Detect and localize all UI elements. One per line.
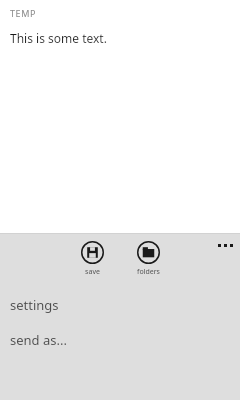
other: save — [81, 241, 104, 264]
staticText: This is some text. — [10, 30, 107, 46]
staticText: send as... — [10, 331, 67, 349]
staticText: folders — [137, 267, 160, 277]
button[interactable]: folders — [129, 234, 167, 277]
staticText: settings — [10, 296, 59, 314]
staticText: save — [85, 267, 100, 277]
staticText: TEMP — [10, 7, 37, 19]
button[interactable]: save — [73, 234, 111, 277]
button[interactable]: settings — [0, 287, 240, 322]
other: folders — [137, 241, 160, 264]
button[interactable]: send as... — [0, 322, 240, 357]
button[interactable]: More options — [210, 234, 240, 256]
